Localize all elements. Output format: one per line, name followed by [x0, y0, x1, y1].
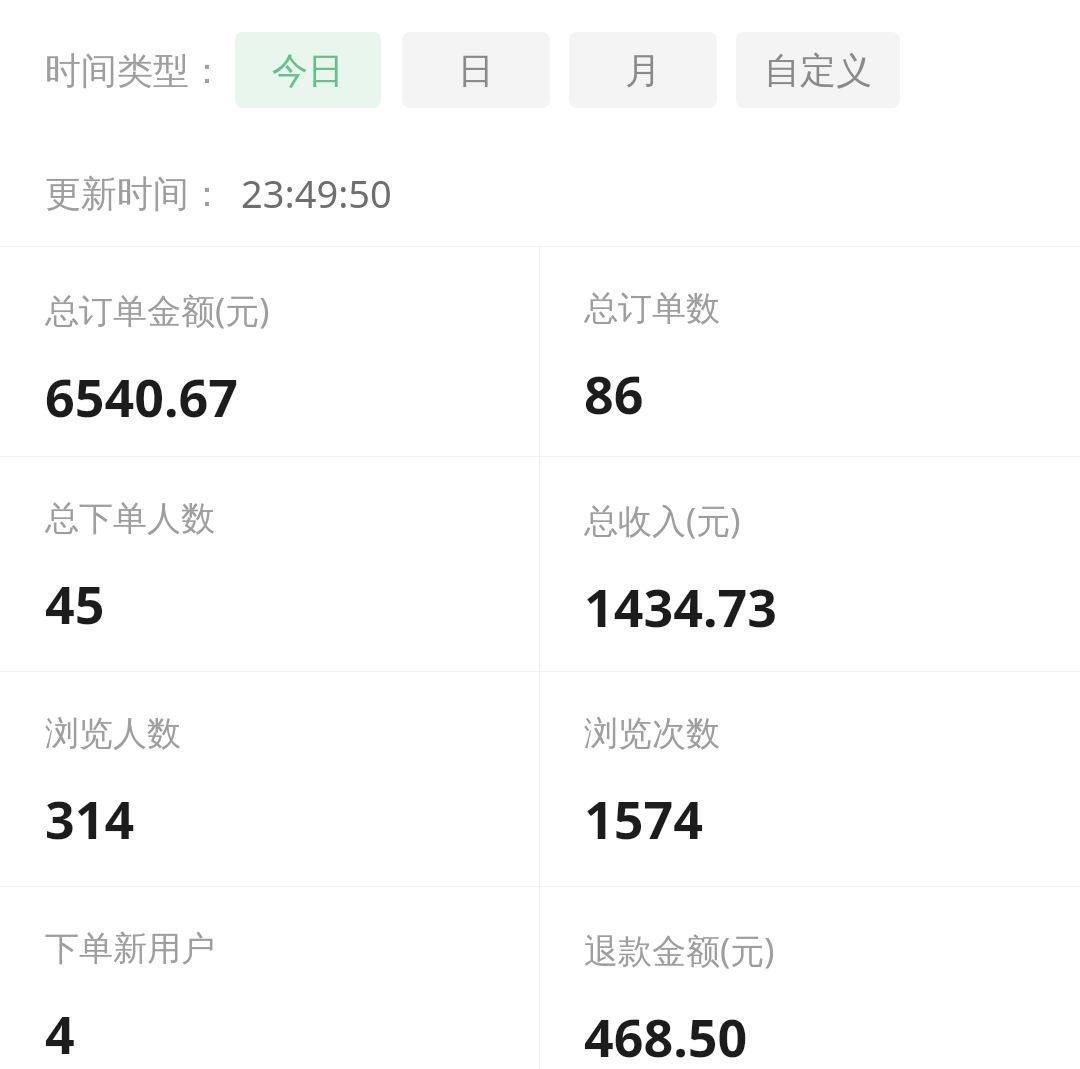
staticText: 4: [45, 998, 75, 1069]
staticText: 更新时间：: [45, 171, 225, 216]
staticText: 86: [584, 358, 644, 429]
staticText: 浏览人数: [45, 712, 181, 755]
staticText: 6540.67: [45, 361, 239, 432]
staticText: 下单新用户: [45, 927, 215, 970]
staticText: 自定义: [764, 48, 872, 93]
button[interactable]: 浏览人数: [0, 672, 539, 886]
button[interactable]: 总订单金额(元): [0, 247, 539, 456]
button[interactable]: 退款金额(元): [539, 887, 1080, 1069]
staticText: 468.50: [584, 1001, 748, 1069]
button[interactable]: 月: [569, 32, 717, 108]
staticText: 314: [45, 783, 135, 854]
staticText: 1434.73: [584, 571, 778, 642]
staticText: 时间类型：: [45, 48, 225, 93]
staticText: 总下单人数: [45, 497, 215, 540]
staticText: 1574: [584, 783, 703, 854]
staticText: 今日: [272, 48, 344, 93]
staticText: 总订单数: [584, 287, 720, 330]
button[interactable]: 日: [402, 32, 550, 108]
staticText: 总收入(元): [584, 497, 741, 543]
staticText: 退款金额(元): [584, 927, 775, 973]
button[interactable]: 总下单人数: [0, 457, 539, 671]
button[interactable]: 自定义: [736, 32, 900, 108]
button[interactable]: 今日: [235, 32, 381, 108]
staticText: 总订单金额(元): [45, 287, 270, 333]
staticText: 45: [45, 568, 105, 639]
button[interactable]: 总收入(元): [539, 457, 1080, 671]
staticText: 浏览次数: [584, 712, 720, 755]
button[interactable]: 总订单数: [539, 247, 1080, 456]
button[interactable]: 浏览次数: [539, 672, 1080, 886]
button[interactable]: 下单新用户: [0, 887, 539, 1069]
staticText: 月: [625, 48, 661, 93]
staticText: 日: [458, 48, 494, 93]
staticText: 23:49:50: [241, 167, 392, 219]
